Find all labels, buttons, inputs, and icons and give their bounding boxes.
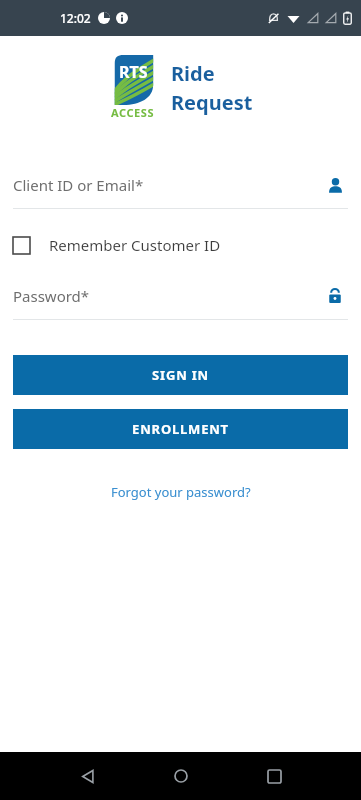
staticText: ACCESS	[111, 105, 155, 120]
staticText: Request	[171, 89, 253, 116]
staticText: Remember Customer ID	[49, 235, 221, 255]
staticText: Password*	[13, 286, 322, 306]
staticText: RTS	[119, 61, 148, 83]
button[interactable]: Client ID or Email*	[0, 172, 361, 209]
button[interactable]: SIGN IN	[13, 355, 348, 395]
staticText: Ride	[171, 60, 215, 87]
button[interactable]: ENROLLMENT	[13, 409, 348, 449]
button[interactable]: Forgot your password?	[0, 479, 361, 505]
staticText: Client ID or Email*	[13, 175, 322, 195]
staticText: 12:02	[60, 10, 91, 26]
staticText: Forgot your password?	[111, 483, 251, 501]
button[interactable]: Home	[164, 759, 198, 793]
staticText: ENROLLMENT	[132, 420, 229, 438]
button[interactable]: Show password	[322, 283, 348, 309]
button[interactable]: Back	[70, 759, 104, 793]
staticText: SIGN IN	[152, 366, 209, 384]
button[interactable]: Remember Customer ID	[0, 235, 361, 255]
button[interactable]: Recent apps	[257, 759, 291, 793]
button[interactable]: Select client	[322, 172, 348, 198]
button[interactable]: Password*	[0, 283, 361, 320]
